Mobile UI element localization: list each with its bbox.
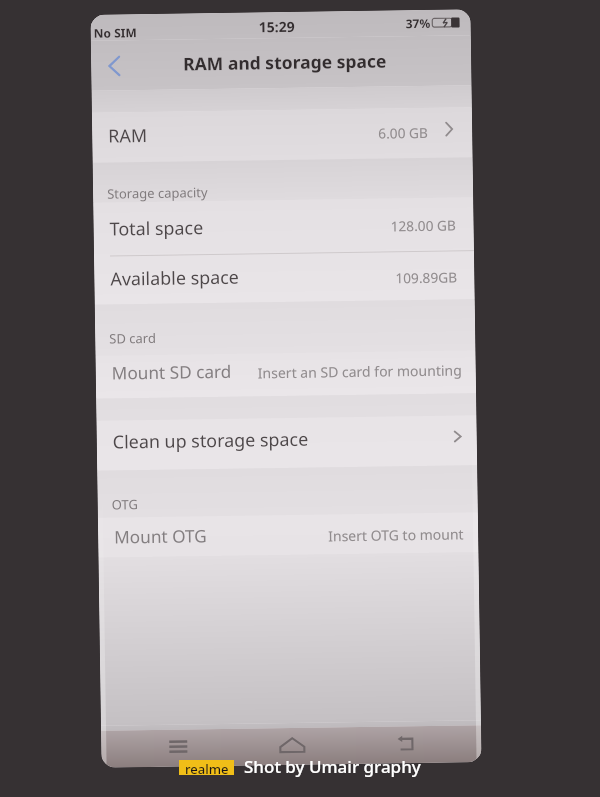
- staticText: 15:29: [258, 17, 295, 36]
- staticText: OTG: [112, 495, 139, 514]
- staticText: Shot by Umair graphy: [244, 755, 421, 778]
- staticText: Mount OTG: [114, 524, 207, 549]
- staticText: No SIM: [94, 24, 137, 41]
- button[interactable]: Total space: [93, 197, 474, 255]
- button[interactable]: Back: [91, 43, 137, 88]
- staticText: Insert OTG to mount: [328, 524, 464, 545]
- button[interactable]: Back: [389, 726, 423, 760]
- button[interactable]: Recent apps: [161, 729, 196, 764]
- staticText: 128.00 GB: [390, 215, 457, 235]
- staticText: 109.89GB: [395, 267, 457, 287]
- staticText: Clean up storage space: [113, 427, 309, 454]
- button[interactable]: Home: [275, 728, 309, 762]
- staticText: 6.00 GB: [378, 123, 428, 143]
- staticText: Storage capacity: [107, 183, 208, 203]
- staticText: 37%: [405, 15, 431, 31]
- button[interactable]: RAM: [92, 107, 473, 163]
- staticText: realme: [185, 760, 229, 775]
- button[interactable]: Clean up storage space: [96, 415, 477, 471]
- staticText: RAM: [108, 123, 147, 148]
- staticText: Insert an SD card for mounting: [258, 360, 462, 382]
- staticText: SD card: [109, 329, 156, 348]
- staticText: RAM and storage space: [183, 48, 387, 75]
- staticText: Total space: [109, 215, 204, 241]
- staticText: Available space: [110, 265, 239, 291]
- button[interactable]: Available space: [94, 250, 475, 305]
- button[interactable]: Mount SD card: [95, 350, 476, 399]
- staticText: Mount SD card: [112, 360, 232, 385]
- button[interactable]: Mount OTG: [98, 512, 478, 558]
